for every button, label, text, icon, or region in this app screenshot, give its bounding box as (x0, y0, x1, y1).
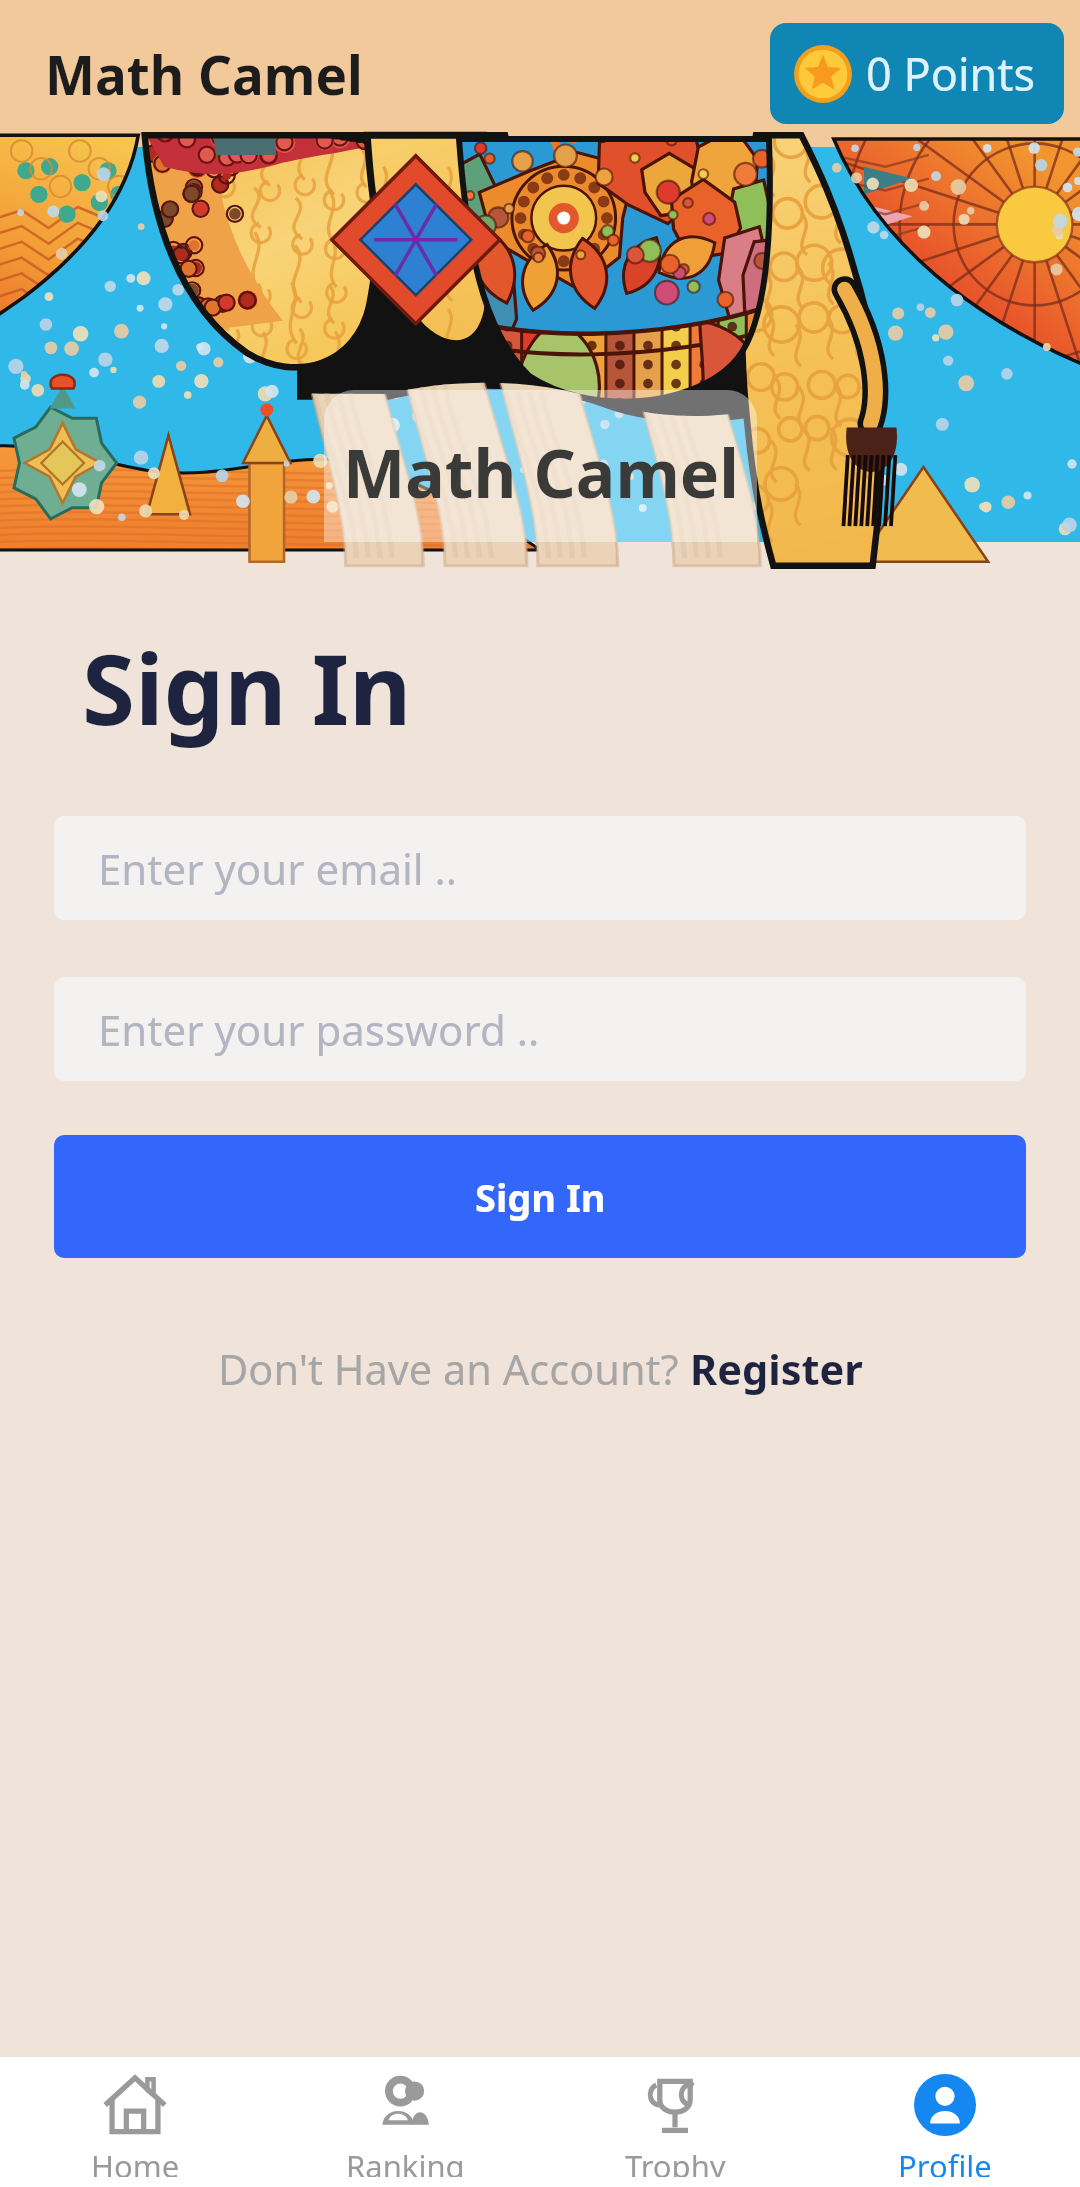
staticText: Don't Have an Account? (218, 1341, 690, 1398)
staticText: Enter your email .. (98, 840, 458, 897)
staticText: Math Camel (45, 38, 363, 110)
staticText: Register (690, 1341, 863, 1398)
staticText: Home (91, 2145, 180, 2177)
button[interactable]: Home (0, 2057, 270, 2187)
staticText: Ranking (346, 2145, 465, 2177)
staticText: Enter your password .. (98, 1001, 540, 1058)
button[interactable]: Enter your email .. (54, 816, 1026, 920)
button[interactable]: Ranking (270, 2057, 540, 2187)
button[interactable]: Trophy (540, 2057, 810, 2187)
button[interactable]: Profile (810, 2057, 1080, 2187)
button[interactable]: Enter your password .. (54, 977, 1026, 1081)
staticText: Profile (898, 2145, 992, 2177)
button[interactable]: Sign In (54, 1135, 1026, 1258)
staticText: Sign In (82, 622, 412, 753)
button[interactable]: 0 Points (770, 23, 1064, 124)
staticText: Math Camel (343, 427, 739, 517)
staticText: 0 Points (866, 43, 1036, 104)
staticText: Trophy (625, 2145, 726, 2177)
staticText: Sign In (475, 1171, 606, 1223)
button[interactable]: Don't Have an Account? (54, 1341, 1026, 1398)
